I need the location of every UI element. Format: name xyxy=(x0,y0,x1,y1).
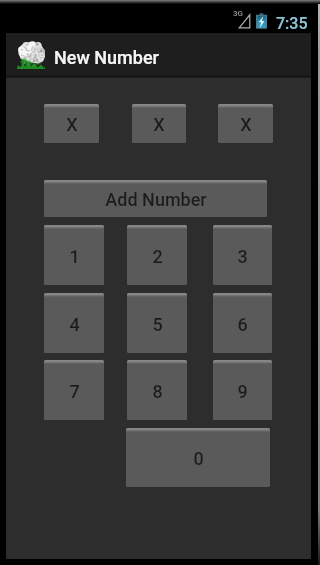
button[interactable]: 2 xyxy=(127,225,187,285)
button[interactable]: Add Number xyxy=(44,180,267,217)
staticText: 1 xyxy=(69,246,80,267)
staticText: 8 xyxy=(152,381,163,402)
staticText: 6 xyxy=(237,314,248,335)
button[interactable]: 4 xyxy=(44,293,104,353)
staticText: X xyxy=(240,114,252,135)
button[interactable]: X xyxy=(44,104,99,143)
button[interactable]: 7 xyxy=(44,360,104,420)
staticText: 7:35 xyxy=(276,14,308,33)
button[interactable]: 1 xyxy=(44,225,104,285)
staticText: 3G xyxy=(233,9,243,18)
staticText: 9 xyxy=(237,381,248,402)
staticText: 3 xyxy=(237,246,248,267)
staticText: X xyxy=(66,114,78,135)
staticText: 2 xyxy=(152,246,163,267)
staticText: New Number xyxy=(54,47,159,68)
staticText: 4 xyxy=(69,314,80,335)
button[interactable]: 6 xyxy=(213,293,272,353)
button[interactable]: X xyxy=(218,104,273,143)
staticText: 7 xyxy=(69,381,80,402)
staticText: Add Number xyxy=(105,189,207,210)
button[interactable]: X xyxy=(132,104,186,143)
button[interactable]: 3 xyxy=(213,225,272,285)
staticText: X xyxy=(153,114,165,135)
button[interactable]: 0 xyxy=(126,428,270,487)
button[interactable]: 9 xyxy=(213,360,272,420)
staticText: 5 xyxy=(152,314,163,335)
button[interactable]: 8 xyxy=(127,360,187,420)
staticText: 0 xyxy=(193,448,204,469)
button[interactable]: 5 xyxy=(127,293,187,353)
